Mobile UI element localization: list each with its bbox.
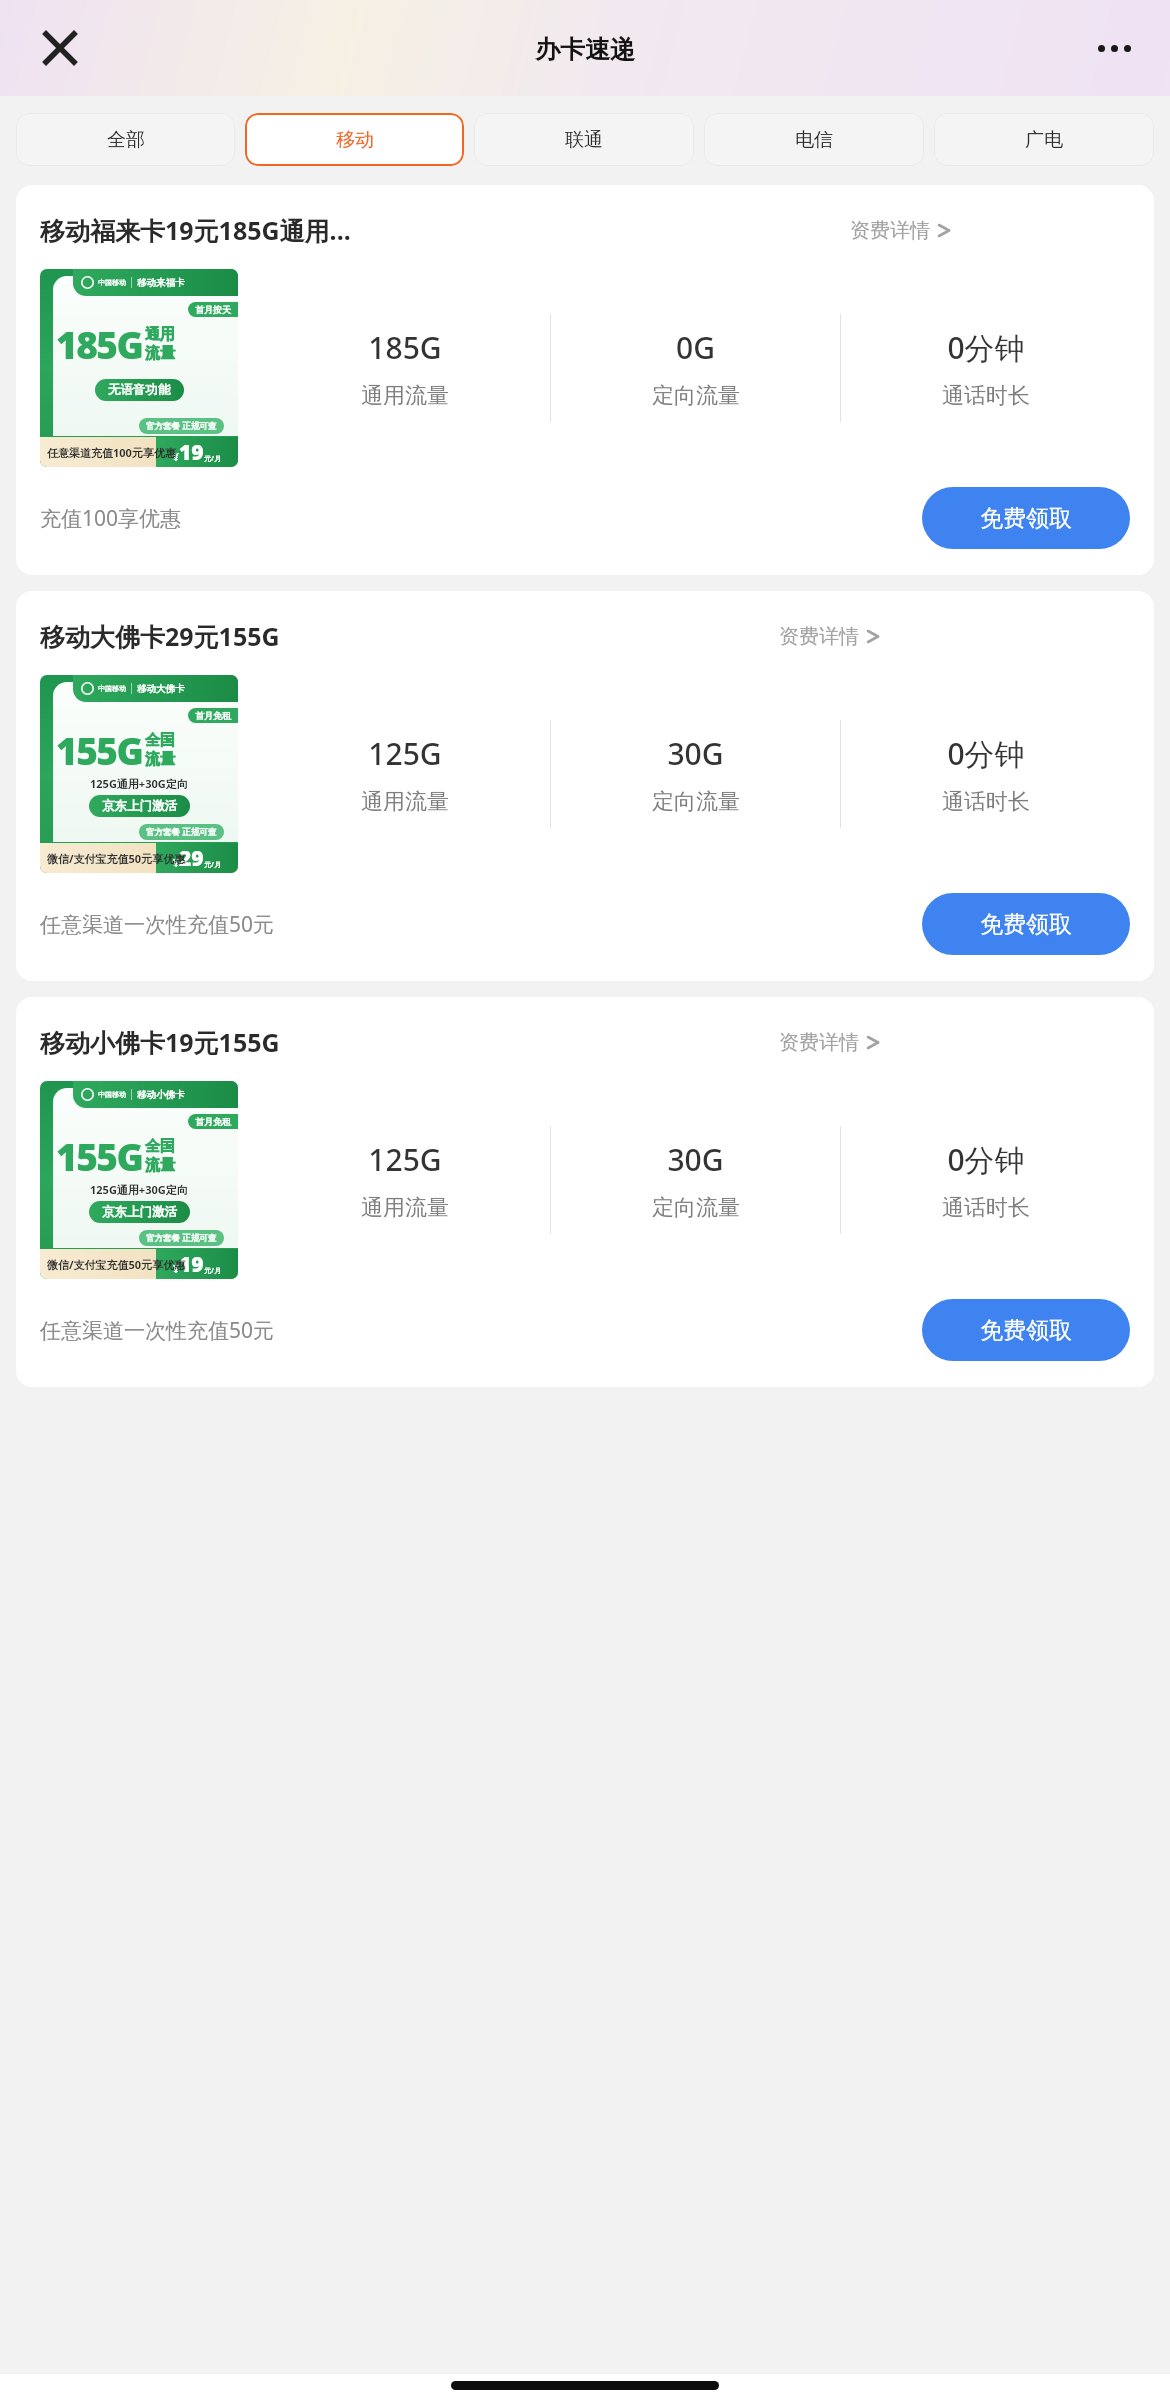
staticText: 微信/支付宝充值50元享优惠 bbox=[47, 1257, 186, 1272]
staticText: 流量 bbox=[145, 750, 175, 769]
staticText: 移动大佛卡29元155G bbox=[40, 619, 280, 653]
staticText: 任意渠道一次性充值50元 bbox=[40, 910, 922, 939]
staticText: 185G bbox=[56, 319, 143, 369]
staticText: 联通 bbox=[565, 128, 603, 152]
staticText: 通话时长 bbox=[942, 788, 1030, 816]
staticText: 通用流量 bbox=[361, 382, 449, 410]
staticText: 通话时长 bbox=[942, 382, 1030, 410]
button[interactable]: More options bbox=[1082, 16, 1146, 80]
staticText: ¥ bbox=[173, 1262, 179, 1276]
staticText: 首月免租 bbox=[195, 710, 231, 721]
staticText: 定向流量 bbox=[652, 1194, 740, 1222]
staticText: 125G bbox=[368, 733, 442, 774]
staticText: 通用流量 bbox=[361, 1194, 449, 1222]
staticText: 元/月 bbox=[204, 454, 221, 464]
staticText: 185G bbox=[368, 327, 442, 368]
staticText: 定向流量 bbox=[652, 788, 740, 816]
staticText: 29 bbox=[179, 844, 204, 873]
staticText: 无语音功能 bbox=[108, 382, 171, 398]
staticText: 移动大佛卡 bbox=[137, 683, 185, 695]
staticText: 125G通用+30G定向 bbox=[90, 776, 188, 791]
button[interactable]: 资费详情 bbox=[771, 1026, 880, 1059]
button[interactable]: 联通 bbox=[474, 113, 694, 166]
button[interactable]: 广电 bbox=[934, 113, 1154, 166]
staticText: 通用流量 bbox=[361, 788, 449, 816]
staticText: 移动小佛卡19元155G bbox=[40, 1025, 280, 1059]
staticText: 125G通用+30G定向 bbox=[90, 1182, 188, 1197]
staticText: 全部 bbox=[107, 128, 145, 152]
staticText: 30G bbox=[667, 733, 724, 774]
staticText: 官方套餐 正规可查 bbox=[146, 826, 217, 838]
button[interactable]: 移动小佛卡19元155G bbox=[16, 997, 1154, 1387]
button[interactable]: 移动大佛卡29元155G bbox=[16, 591, 1154, 981]
button[interactable]: 免费领取 bbox=[922, 893, 1130, 955]
button[interactable]: 移动 bbox=[245, 113, 464, 166]
staticText: 移动来福卡 bbox=[137, 277, 185, 289]
staticText: 30G bbox=[667, 1139, 724, 1180]
staticText: ¥ bbox=[173, 450, 179, 464]
staticText: 移动福来卡19元185G通用... bbox=[40, 213, 351, 247]
staticText: 首月按天 bbox=[195, 304, 231, 315]
staticText: 0分钟 bbox=[947, 327, 1025, 368]
staticText: 中国移动 bbox=[98, 278, 126, 287]
button[interactable]: Close bbox=[28, 16, 92, 80]
button[interactable]: 全部 bbox=[16, 113, 235, 166]
staticText: 首月免租 bbox=[195, 1116, 231, 1127]
staticText: 元/月 bbox=[204, 1266, 221, 1276]
staticText: 155G bbox=[56, 1131, 143, 1181]
staticText: 中国移动 bbox=[98, 1090, 126, 1099]
staticText: 全国 bbox=[145, 731, 175, 750]
staticText: 京东上门激活 bbox=[102, 1204, 177, 1220]
staticText: 任意渠道充值100元享优惠 bbox=[47, 445, 176, 460]
staticText: 通话时长 bbox=[942, 1194, 1030, 1222]
staticText: 免费领取 bbox=[980, 910, 1072, 939]
staticText: 免费领取 bbox=[980, 1316, 1072, 1345]
staticText: 通用 bbox=[145, 325, 175, 344]
staticText: 任意渠道一次性充值50元 bbox=[40, 1316, 922, 1345]
staticText: 流量 bbox=[145, 344, 175, 363]
staticText: 官方套餐 正规可查 bbox=[146, 1232, 217, 1244]
staticText: 0G bbox=[676, 327, 715, 368]
button[interactable]: 电信 bbox=[704, 113, 924, 166]
staticText: 移动 bbox=[336, 128, 374, 152]
staticText: 19 bbox=[179, 1250, 204, 1279]
staticText: 流量 bbox=[145, 1156, 175, 1175]
button[interactable]: 资费详情 bbox=[842, 214, 951, 247]
button[interactable]: 资费详情 bbox=[771, 620, 880, 653]
staticText: 全国 bbox=[145, 1137, 175, 1156]
staticText: 元/月 bbox=[204, 860, 221, 870]
staticText: 中国移动 bbox=[98, 684, 126, 693]
button[interactable]: 免费领取 bbox=[922, 487, 1130, 549]
staticText: 资费详情 bbox=[779, 624, 859, 649]
staticText: 充值100享优惠 bbox=[40, 504, 922, 533]
staticText: 电信 bbox=[795, 128, 833, 152]
staticText: 0分钟 bbox=[947, 1139, 1025, 1180]
staticText: 19 bbox=[179, 438, 204, 467]
staticText: ¥ bbox=[173, 856, 179, 870]
button[interactable]: 免费领取 bbox=[922, 1299, 1130, 1361]
button[interactable]: 移动福来卡19元185G通用... bbox=[16, 185, 1154, 575]
staticText: 京东上门激活 bbox=[102, 798, 177, 814]
staticText: 资费详情 bbox=[779, 1030, 859, 1055]
staticText: 定向流量 bbox=[652, 382, 740, 410]
staticText: 0分钟 bbox=[947, 733, 1025, 774]
staticText: 移动小佛卡 bbox=[137, 1089, 185, 1101]
staticText: 155G bbox=[56, 725, 143, 775]
staticText: 广电 bbox=[1025, 128, 1063, 152]
staticText: 官方套餐 正规可查 bbox=[146, 420, 217, 432]
staticText: 办卡速递 bbox=[535, 34, 635, 65]
staticText: 微信/支付宝充值50元享优惠 bbox=[47, 851, 186, 866]
staticText: 125G bbox=[368, 1139, 442, 1180]
staticText: 免费领取 bbox=[980, 504, 1072, 533]
staticText: 资费详情 bbox=[850, 218, 930, 243]
